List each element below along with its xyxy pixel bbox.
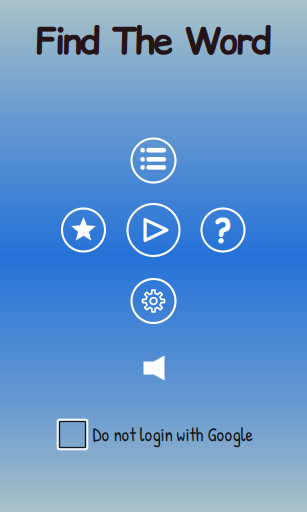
staticText: Do not login with Google bbox=[92, 422, 252, 447]
button[interactable]: Help bbox=[201, 208, 244, 251]
button[interactable]: Do not login with Google bbox=[57, 419, 252, 449]
button[interactable]: Sound bbox=[137, 351, 171, 385]
staticText: ? bbox=[213, 206, 233, 254]
button[interactable]: Levels bbox=[131, 138, 175, 182]
staticText: Find The Word bbox=[35, 16, 272, 66]
button[interactable]: Favourites bbox=[62, 208, 105, 251]
button[interactable]: Settings bbox=[131, 279, 175, 323]
button[interactable]: Play bbox=[127, 204, 179, 256]
